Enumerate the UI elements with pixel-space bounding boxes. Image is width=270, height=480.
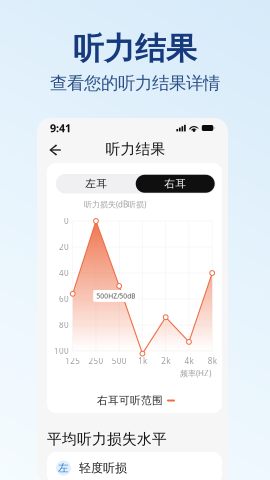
staticText: 0: [64, 216, 69, 226]
button[interactable]: 返回: [44, 139, 66, 161]
staticText: 250: [88, 356, 103, 366]
staticText: 平均听力损失水平: [47, 430, 167, 448]
staticText: 60: [59, 294, 69, 304]
staticText: 右耳: [164, 177, 186, 190]
staticText: 20: [59, 242, 69, 252]
staticText: 听力结果: [73, 30, 197, 68]
staticText: 2k: [161, 356, 170, 366]
button[interactable]: 右耳: [136, 175, 215, 193]
staticText: 125: [65, 356, 80, 366]
staticText: 查看您的听力结果详情: [50, 73, 220, 94]
staticText: 80: [59, 320, 69, 330]
staticText: 1k: [138, 356, 147, 366]
staticText: 轻度听损: [79, 461, 127, 475]
staticText: 左耳: [85, 177, 107, 190]
button[interactable]: 左: [47, 452, 222, 480]
staticText: 40: [59, 268, 69, 278]
button[interactable]: 左耳: [57, 175, 136, 193]
staticText: 听力损失(dB听损): [84, 199, 146, 210]
staticText: 右耳可听范围: [97, 394, 163, 407]
staticText: 500: [112, 356, 127, 366]
staticText: 频率(HZ): [180, 368, 211, 379]
staticText: 9:41: [50, 121, 71, 135]
staticText: 8k: [208, 356, 217, 366]
staticText: 4k: [184, 356, 193, 366]
staticText: 100: [54, 346, 69, 356]
staticText: 听力结果: [105, 140, 165, 158]
staticText: 左: [58, 461, 69, 474]
staticText: 500HZ/50dB: [96, 291, 135, 300]
